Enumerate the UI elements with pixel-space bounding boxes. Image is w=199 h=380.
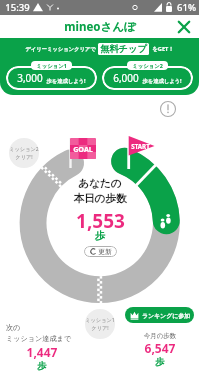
- staticText: をGET！: [152, 45, 174, 53]
- staticText: ランキングに参加: [142, 312, 190, 319]
- staticText: 15:39: [5, 1, 30, 14]
- staticText: 歩を達成しよう!: [46, 77, 86, 84]
- staticText: 更新: [98, 247, 112, 256]
- staticText: 歩: [6, 360, 78, 372]
- staticText: START: [131, 142, 150, 150]
- staticText: 歩: [95, 229, 105, 242]
- staticText: 6,547: [124, 340, 196, 356]
- staticText: GOAL: [73, 144, 93, 154]
- staticText: ミッション2 クリア!: [9, 145, 39, 161]
- button[interactable]: Close: [174, 17, 194, 37]
- staticText: あなたの 本日の歩数: [73, 177, 127, 205]
- button[interactable]: 6,000: [102, 66, 193, 90]
- button[interactable]: ランキングに参加: [125, 307, 194, 323]
- staticText: 1,553: [76, 208, 125, 234]
- staticText: デイリーミッションクリアで: [25, 46, 96, 53]
- staticText: 歩を達成しよう!: [142, 77, 182, 84]
- button[interactable]: Information: [159, 100, 177, 118]
- staticText: 3,000: [17, 71, 43, 85]
- staticText: 歩: [124, 356, 196, 368]
- staticText: 今月の歩数: [124, 332, 196, 340]
- button[interactable]: 更新: [84, 246, 117, 257]
- button[interactable]: デイリーミッションクリアで: [0, 38, 199, 60]
- staticText: 次の ミッション達成まで: [6, 323, 78, 344]
- staticText: 6,000: [113, 71, 139, 85]
- staticText: ミッション2: [132, 62, 163, 69]
- staticText: 61%: [177, 1, 196, 14]
- staticText: 無料チップ: [100, 43, 147, 55]
- staticText: ミッション1 クリア!: [85, 316, 115, 332]
- staticText: ミッション1: [36, 62, 67, 69]
- staticText: mineoさんぽ: [64, 19, 136, 35]
- staticText: 1,447: [6, 344, 78, 360]
- button[interactable]: 3,000: [6, 66, 97, 90]
